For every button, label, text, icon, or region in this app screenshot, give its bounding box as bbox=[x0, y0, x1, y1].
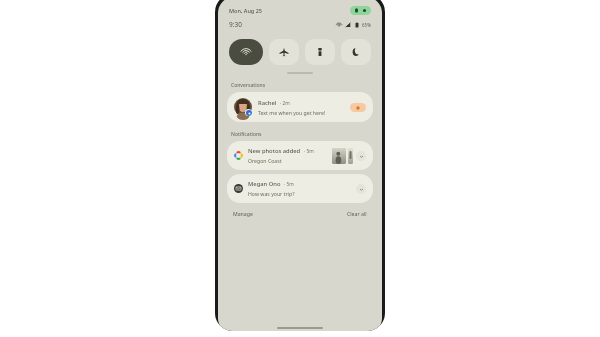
button[interactable]: Expand bbox=[356, 184, 366, 194]
button[interactable]: Expand bbox=[356, 151, 366, 161]
staticText: Megan Ono bbox=[248, 180, 281, 188]
staticText: · 5m bbox=[284, 181, 294, 188]
button[interactable]: Flashlight bbox=[305, 39, 335, 65]
staticText: Conversations bbox=[231, 82, 266, 89]
staticText: Notifications bbox=[231, 131, 262, 138]
staticText: New photos added bbox=[248, 147, 301, 155]
staticText: Mon, Aug 25 bbox=[229, 7, 262, 14]
staticText: 65% bbox=[362, 22, 371, 28]
button[interactable]: Clear all bbox=[345, 208, 369, 219]
button[interactable]: Manage bbox=[231, 208, 255, 219]
button[interactable]: New photos added bbox=[227, 141, 373, 170]
staticText: · 2m bbox=[280, 100, 290, 107]
staticText: Clear all bbox=[347, 210, 367, 217]
staticText: Text me when you get here! bbox=[258, 109, 326, 116]
button[interactable]: Do not disturb bbox=[341, 39, 371, 65]
staticText: 9:30 bbox=[229, 20, 242, 29]
staticText: Oregon Coast bbox=[248, 157, 282, 164]
button[interactable]: Privacy indicators bbox=[354, 8, 367, 13]
button[interactable]: Airplane mode bbox=[269, 39, 299, 65]
staticText: How was your trip? bbox=[248, 190, 295, 197]
button[interactable]: Megan Ono bbox=[227, 174, 373, 203]
staticText: Rachel bbox=[258, 99, 277, 107]
staticText: Manage bbox=[233, 210, 253, 217]
button[interactable]: Reply bbox=[350, 103, 366, 112]
button[interactable]: Rachel bbox=[227, 92, 373, 122]
staticText: · 5m bbox=[304, 148, 314, 155]
button[interactable]: Internet bbox=[229, 39, 263, 65]
